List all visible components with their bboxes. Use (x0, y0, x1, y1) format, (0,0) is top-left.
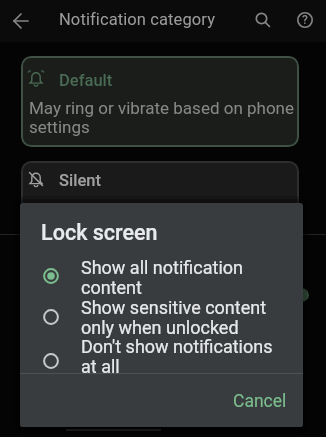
button[interactable] (20, 255, 303, 296)
button[interactable] (20, 336, 303, 373)
staticText: ? (302, 13, 308, 27)
staticText: Don't show notifications at all (81, 336, 273, 377)
staticText: Show all notification content (81, 257, 243, 298)
staticText: Lock screen (41, 220, 158, 245)
button[interactable]: Silent (21, 161, 299, 235)
staticText: Default (59, 71, 113, 90)
staticText: Show sensitive content only when unlocke… (81, 297, 267, 338)
button[interactable]: ? (290, 5, 320, 35)
staticText: Notification category (59, 10, 216, 29)
staticText: May ring or vibrate based on phone setti… (29, 98, 295, 137)
button[interactable]: Cancel (223, 383, 298, 417)
button[interactable] (248, 5, 278, 35)
staticText: Silent (59, 171, 101, 190)
button[interactable] (20, 296, 303, 336)
button[interactable] (6, 6, 36, 36)
button[interactable]: Default (21, 56, 299, 147)
staticText: Cancel (233, 391, 287, 412)
